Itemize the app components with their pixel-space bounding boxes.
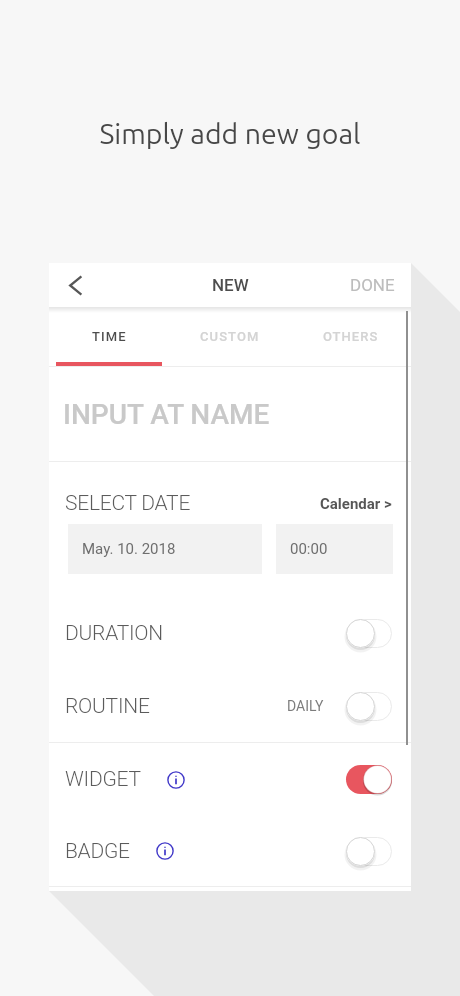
button[interactable]: OTHERS [290, 307, 411, 367]
button[interactable]: Switch off [346, 619, 392, 648]
button[interactable]: Switch off [346, 692, 392, 721]
button[interactable]: INPUT AT NAME [49, 367, 411, 462]
staticText: NEW [212, 275, 249, 295]
button[interactable]: Switch off [346, 837, 392, 866]
staticText: DONE [350, 275, 395, 295]
button[interactable]: May. 10. 2018 [68, 524, 262, 574]
button[interactable]: WIDGET [49, 743, 411, 816]
staticText: INPUT AT NAME [63, 398, 270, 431]
staticText: BADGE [65, 839, 130, 864]
button[interactable]: TIME [49, 307, 169, 367]
button[interactable]: BADGE [49, 816, 411, 886]
button[interactable]: Calendar > [320, 495, 392, 513]
staticText: TIME [92, 329, 127, 344]
other: More information [156, 842, 174, 860]
staticText: WIDGET [65, 767, 141, 792]
staticText: DAILY [287, 698, 324, 714]
staticText: OTHERS [323, 329, 379, 344]
staticText: May. 10. 2018 [82, 540, 176, 558]
staticText: DURATION [65, 621, 163, 646]
button[interactable]: DURATION [49, 597, 411, 670]
button[interactable]: CUSTOM [169, 307, 290, 367]
button[interactable]: 00:00 [276, 524, 393, 574]
button[interactable]: DONE [334, 263, 411, 307]
staticText: ROUTINE [65, 694, 150, 719]
staticText: Simply add new goal [0, 117, 460, 149]
staticText: CUSTOM [200, 329, 260, 344]
button[interactable]: Back [49, 263, 97, 307]
staticText: SELECT DATE [65, 491, 191, 516]
button[interactable]: ROUTINE [49, 670, 411, 742]
button[interactable]: Switch on [346, 765, 392, 794]
other: More information [167, 771, 185, 789]
staticText: Calendar > [320, 495, 392, 513]
staticText: 00:00 [290, 540, 328, 558]
